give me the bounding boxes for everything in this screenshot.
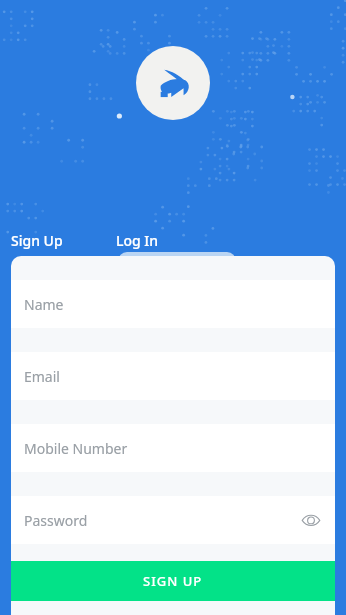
button[interactable]: Name: [11, 280, 335, 328]
staticText: Email: [24, 367, 60, 386]
staticText: Sign Up: [11, 231, 63, 250]
button[interactable]: Password: [11, 496, 335, 544]
button[interactable]: SIGN UP: [11, 561, 335, 601]
staticText: Log In: [116, 231, 159, 250]
button[interactable]: Mobile Number: [11, 424, 335, 472]
button[interactable]: Email: [11, 352, 335, 400]
button[interactable]: Sign Up: [11, 231, 63, 250]
button[interactable]: Show password: [299, 508, 323, 532]
staticText: SIGN UP: [143, 572, 203, 590]
staticText: Password: [24, 511, 88, 530]
staticText: Name: [24, 295, 64, 314]
button[interactable]: Log In: [116, 231, 159, 250]
staticText: Mobile Number: [24, 439, 128, 458]
